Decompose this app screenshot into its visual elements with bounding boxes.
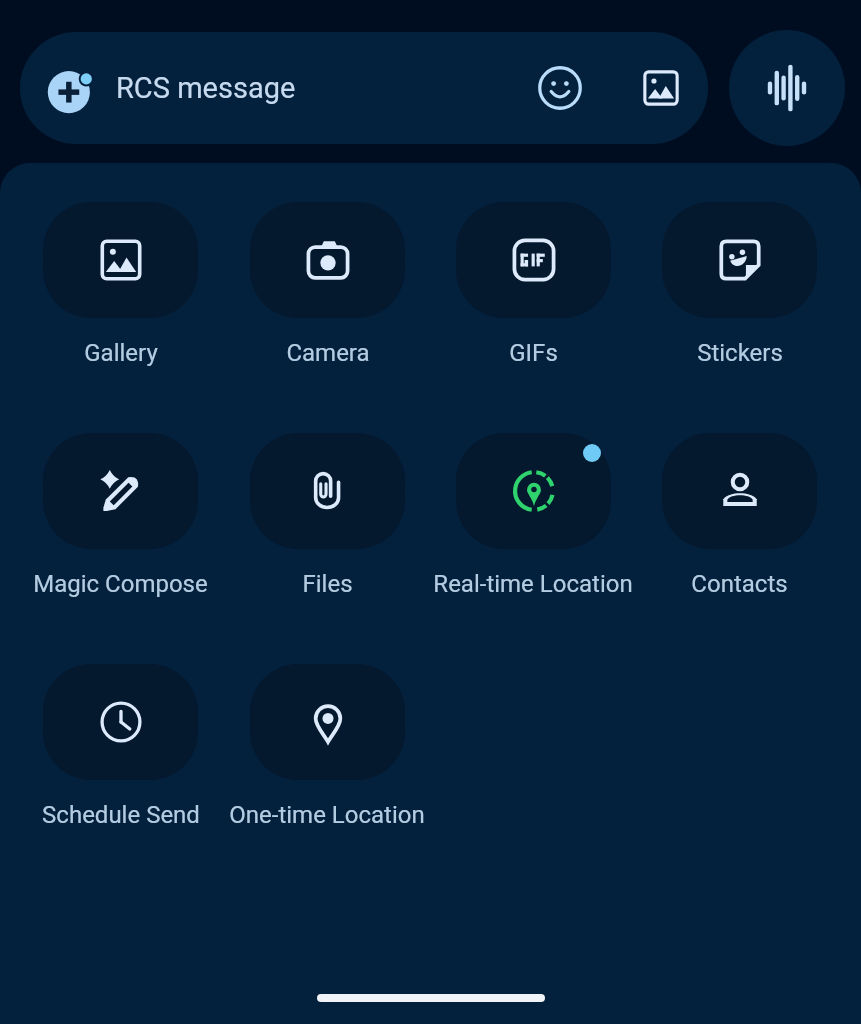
staticText: Real-time Location bbox=[433, 570, 633, 598]
staticText: Magic Compose bbox=[33, 570, 208, 598]
staticText: Camera bbox=[286, 339, 370, 367]
button[interactable]: Stickers bbox=[652, 202, 827, 367]
staticText: RCS message bbox=[116, 71, 296, 105]
button[interactable]: Contacts bbox=[652, 433, 827, 598]
button[interactable]: RCS message bbox=[20, 32, 708, 144]
button[interactable]: Magic Compose bbox=[33, 433, 208, 598]
staticText: Gallery bbox=[84, 339, 158, 367]
button[interactable]: Schedule Send bbox=[33, 664, 208, 829]
staticText: Contacts bbox=[691, 570, 788, 598]
button[interactable]: GIFs bbox=[446, 202, 621, 367]
staticText: Stickers bbox=[697, 339, 783, 367]
button[interactable]: Voice message bbox=[729, 30, 845, 146]
button[interactable]: Files bbox=[240, 433, 415, 598]
staticText: GIFs bbox=[509, 339, 558, 367]
staticText: One-time Location bbox=[229, 801, 425, 829]
staticText: Files bbox=[302, 570, 353, 598]
button[interactable]: Gallery bbox=[33, 202, 208, 367]
button[interactable]: One-time Location bbox=[229, 664, 425, 829]
button[interactable]: Camera bbox=[240, 202, 415, 367]
button[interactable]: Emoji bbox=[524, 52, 596, 124]
button[interactable]: Real-time Location bbox=[433, 433, 633, 598]
staticText: Schedule Send bbox=[42, 801, 200, 829]
button[interactable]: Gallery bbox=[625, 52, 697, 124]
